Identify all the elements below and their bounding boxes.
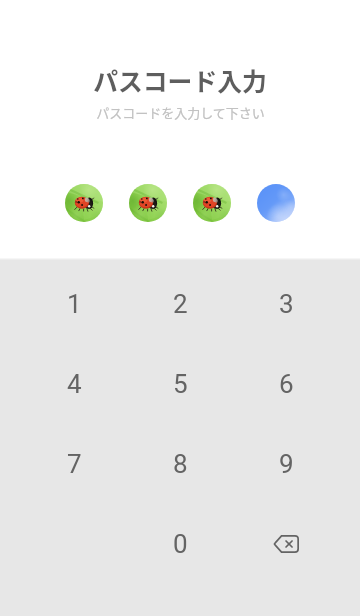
staticText: パスコード入力	[93, 62, 267, 98]
staticText: 4	[67, 369, 82, 399]
button[interactable]: 9	[233, 424, 339, 504]
button[interactable]: 3	[233, 264, 339, 344]
button[interactable]: 1	[21, 264, 127, 344]
staticText: 1	[67, 289, 82, 319]
staticText: 7	[67, 449, 82, 479]
button[interactable]: 5	[127, 344, 233, 424]
button[interactable]: 7	[21, 424, 127, 504]
staticText: 6	[279, 369, 294, 399]
staticText: 2	[173, 289, 188, 319]
staticText: 3	[279, 289, 294, 319]
staticText: 8	[173, 449, 188, 479]
button[interactable]: 6	[233, 344, 339, 424]
button[interactable]: 0	[127, 504, 233, 584]
staticText: パスコードを入力して下さい	[96, 103, 265, 122]
button[interactable]: 8	[127, 424, 233, 504]
button[interactable]: 4	[21, 344, 127, 424]
staticText: 5	[173, 369, 188, 399]
button[interactable]: 2	[127, 264, 233, 344]
button[interactable]: Delete	[233, 504, 339, 584]
staticText: 9	[279, 449, 294, 479]
staticText: 0	[173, 529, 188, 559]
